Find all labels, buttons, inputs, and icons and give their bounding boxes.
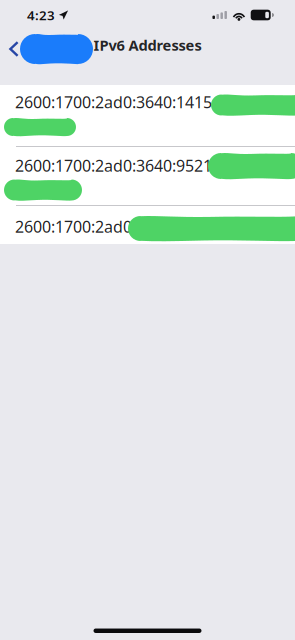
staticText: 2600:1700:2ad0:3640:9521 (15, 155, 212, 176)
button[interactable]: 2600:1700:2ad0 (0, 206, 295, 244)
button[interactable]: Back (0, 34, 295, 64)
button[interactable]: 2600:1700:2ad0:3640:9521 (0, 147, 295, 205)
button[interactable]: 2600:1700:2ad0:3640:1415 (0, 85, 295, 146)
staticText: IPv6 Addresses (93, 35, 201, 55)
staticText: 4:23 (27, 6, 55, 24)
staticText: 2600:1700:2ad0 (15, 216, 132, 237)
staticText: 2600:1700:2ad0:3640:1415 (15, 91, 212, 113)
